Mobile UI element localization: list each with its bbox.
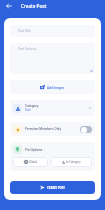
button[interactable]: Post Title [10, 25, 95, 37]
staticText: Add Images [47, 86, 65, 90]
button[interactable]: Category [10, 100, 95, 116]
button[interactable]: Post Content... [10, 43, 95, 74]
button[interactable]: Global [13, 157, 48, 167]
button[interactable]: CREATE POST [10, 181, 95, 194]
staticText: In Category [66, 160, 81, 164]
staticText: CREATE POST [47, 186, 65, 190]
staticText: Premium Members Only [25, 127, 80, 131]
staticText: Create Post [21, 3, 47, 9]
button[interactable]: Back [3, 0, 14, 11]
button[interactable]: Add Images [10, 80, 95, 94]
staticText: Category [25, 104, 39, 108]
button[interactable] [80, 126, 92, 133]
button[interactable]: Premium Members Only [10, 122, 95, 136]
other: Expand [88, 106, 92, 110]
staticText: Post Title [18, 29, 31, 33]
staticText: Pin Options [25, 148, 43, 152]
staticText: Global [29, 160, 38, 164]
staticText: Post Content... [18, 47, 38, 51]
staticText: Tech [25, 108, 31, 112]
button[interactable]: In Category [51, 157, 92, 167]
